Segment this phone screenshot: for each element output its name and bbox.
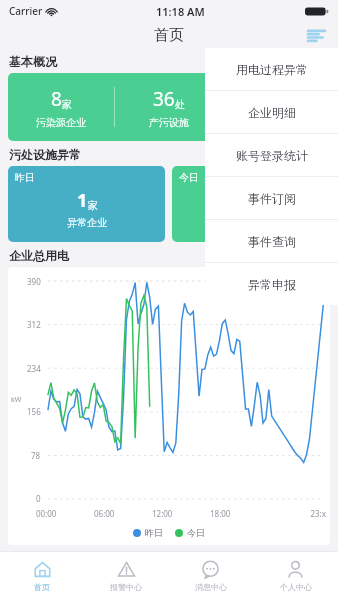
staticText: 06:00 xyxy=(94,508,152,519)
staticText: 首页 xyxy=(154,26,184,45)
staticText: 18:00 xyxy=(210,508,268,519)
button[interactable]: 8 xyxy=(8,73,330,141)
button[interactable]: 35 xyxy=(223,86,330,129)
button[interactable]: 昨日 xyxy=(133,527,163,538)
staticText: 事件查询 xyxy=(248,234,296,249)
button[interactable]: 消息中心 xyxy=(168,552,253,600)
staticText: 污处设施 xyxy=(257,116,297,129)
staticText: 消息中心 xyxy=(195,582,227,592)
staticText: 产污设施 xyxy=(149,116,189,129)
button[interactable]: 首页 xyxy=(0,552,84,600)
button[interactable]: 事件查询 xyxy=(205,220,338,262)
staticText: 家 xyxy=(88,199,98,212)
staticText: 00:00 xyxy=(36,508,94,519)
staticText: 处 xyxy=(175,98,185,111)
staticText: 个人中心 xyxy=(280,582,312,592)
staticText: 家 xyxy=(62,98,72,111)
staticText: 污染源企业 xyxy=(36,116,86,129)
button[interactable]: 36 xyxy=(115,86,222,129)
staticText: 异常企业 xyxy=(231,216,271,229)
button[interactable]: 个人中心 xyxy=(253,552,338,600)
staticText: 用电过程异常 xyxy=(236,62,308,77)
staticText: 11:18 AM xyxy=(156,4,205,19)
button[interactable]: 账号登录统计 xyxy=(205,134,338,176)
staticText: Carrier xyxy=(9,4,43,18)
staticText: 污处设施异常 xyxy=(9,147,81,162)
staticText: 今日 xyxy=(187,527,205,538)
staticText: 78 xyxy=(31,450,41,461)
staticText: 事件订阅 xyxy=(248,191,296,206)
staticText: 昨日 xyxy=(145,527,163,538)
staticText: 报警中心 xyxy=(110,582,142,592)
staticText: 36 xyxy=(153,86,175,112)
button[interactable]: 事件订阅 xyxy=(205,177,338,219)
button[interactable]: 今日 xyxy=(172,166,330,242)
staticText: 0 xyxy=(241,188,252,213)
staticText: 企业明细 xyxy=(248,105,296,120)
staticText: 异常申报 xyxy=(248,277,296,292)
staticText: 处 xyxy=(283,98,293,111)
staticText: 家 xyxy=(252,199,262,212)
staticText: 首页 xyxy=(34,582,50,592)
button[interactable]: Menu xyxy=(304,23,328,47)
button[interactable]: 报警中心 xyxy=(84,552,168,600)
staticText: 35 xyxy=(261,86,283,112)
button[interactable]: 8 xyxy=(8,86,114,129)
button[interactable]: 企业明细 xyxy=(205,91,338,133)
staticText: 企业总用电 xyxy=(9,248,69,263)
staticText: 账号登录统计 xyxy=(236,148,308,163)
button[interactable]: 昨日 xyxy=(8,166,165,242)
button[interactable]: 异常申报 xyxy=(205,263,338,305)
staticText: 异常企业 xyxy=(67,216,107,229)
staticText: 312 xyxy=(27,319,41,330)
staticText: 基本概况 xyxy=(9,54,57,69)
button[interactable]: 今日 xyxy=(175,527,205,538)
staticText: 23:x xyxy=(268,508,326,519)
staticText: 1 xyxy=(77,188,88,213)
staticText: 12:00 xyxy=(152,508,210,519)
staticText: 8 xyxy=(51,86,62,112)
staticText: 156 xyxy=(27,406,41,417)
staticText: 390 xyxy=(27,276,41,287)
button[interactable]: 用电过程异常 xyxy=(205,48,338,90)
staticText: 234 xyxy=(27,363,41,374)
staticText: 今日 xyxy=(179,171,199,184)
staticText: kW xyxy=(11,395,22,405)
staticText: 0 xyxy=(36,493,41,504)
staticText: 昨日 xyxy=(15,171,35,184)
